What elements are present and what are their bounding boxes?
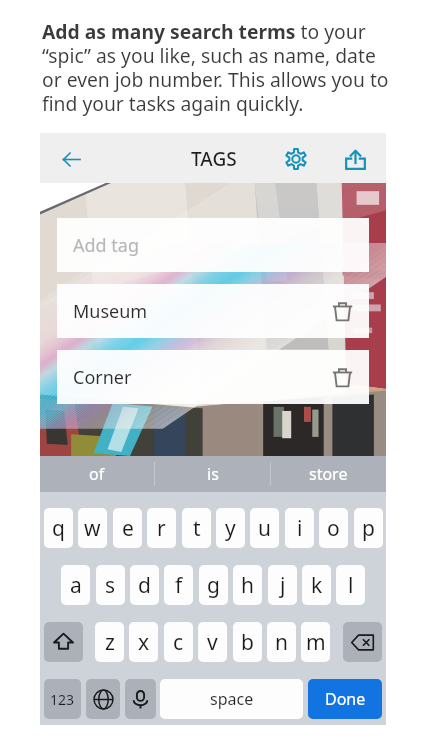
button[interactable]: Backspace — [343, 622, 382, 662]
button[interactable]: l — [336, 565, 365, 605]
staticText: a — [70, 571, 82, 600]
button[interactable]: s — [96, 565, 125, 605]
staticText: n — [275, 628, 288, 657]
button[interactable]: t — [182, 508, 211, 548]
staticText: x — [138, 628, 150, 657]
staticText: z — [105, 628, 115, 657]
staticText: w — [84, 514, 101, 543]
button[interactable]: n — [267, 622, 296, 662]
button[interactable]: 123 — [44, 679, 81, 719]
button[interactable]: Shift — [44, 622, 83, 662]
staticText: Add tag — [73, 233, 139, 258]
staticText: e — [122, 514, 134, 543]
staticText: i — [297, 514, 303, 543]
button[interactable]: Dictate — [125, 679, 156, 719]
button[interactable]: o — [319, 508, 348, 548]
button[interactable]: Settings — [276, 139, 316, 179]
button[interactable]: Delete tag — [324, 359, 360, 395]
button[interactable]: x — [129, 622, 158, 662]
button[interactable]: f — [164, 565, 193, 605]
button[interactable]: c — [164, 622, 193, 662]
button[interactable]: Add tag — [57, 218, 369, 272]
button[interactable]: u — [250, 508, 279, 548]
staticText: Done — [325, 688, 366, 710]
button[interactable]: k — [302, 565, 331, 605]
staticText: store — [309, 463, 348, 485]
button[interactable]: Delete tag — [324, 293, 360, 329]
staticText: s — [105, 571, 116, 600]
button[interactable]: Corner — [57, 350, 369, 404]
button[interactable]: Back — [51, 139, 91, 179]
button[interactable]: i — [285, 508, 314, 548]
button[interactable]: r — [147, 508, 176, 548]
staticText: Add as many search terms to your “spic” … — [42, 18, 390, 116]
staticText: TAGS — [191, 146, 237, 172]
staticText: Corner — [73, 365, 132, 390]
button[interactable]: v — [198, 622, 227, 662]
button[interactable]: g — [199, 565, 228, 605]
button[interactable]: a — [61, 565, 90, 605]
button[interactable]: b — [233, 622, 262, 662]
button[interactable]: w — [78, 508, 107, 548]
staticText: r — [157, 514, 166, 543]
button[interactable]: Done — [308, 679, 382, 719]
staticText: Museum — [73, 299, 148, 324]
button[interactable]: y — [216, 508, 245, 548]
staticText: of — [89, 463, 105, 485]
staticText: b — [241, 628, 254, 657]
staticText: p — [362, 514, 375, 543]
staticText: j — [280, 571, 286, 600]
staticText: d — [138, 571, 151, 600]
staticText: c — [173, 628, 184, 657]
staticText: 123 — [50, 690, 75, 709]
button[interactable]: store — [271, 456, 386, 492]
staticText: o — [327, 514, 340, 543]
staticText: l — [348, 571, 354, 600]
staticText: f — [175, 571, 183, 600]
staticText: h — [241, 571, 254, 600]
button[interactable]: Change keyboard language — [86, 679, 120, 719]
staticText: t — [193, 514, 201, 543]
button[interactable]: j — [268, 565, 297, 605]
button[interactable]: p — [354, 508, 383, 548]
button[interactable]: e — [113, 508, 142, 548]
staticText: g — [207, 571, 220, 600]
staticText: m — [306, 628, 326, 657]
button[interactable]: is — [155, 456, 270, 492]
staticText: k — [311, 571, 323, 600]
button[interactable]: d — [130, 565, 159, 605]
button[interactable]: h — [233, 565, 262, 605]
button[interactable]: m — [301, 622, 330, 662]
button[interactable]: Museum — [57, 284, 369, 338]
staticText: space — [210, 688, 254, 710]
button[interactable]: Share — [335, 139, 375, 179]
button[interactable]: q — [44, 508, 73, 548]
staticText: y — [225, 514, 236, 543]
staticText: u — [258, 514, 271, 543]
button[interactable]: of — [40, 456, 154, 492]
button[interactable]: space — [160, 679, 303, 719]
staticText: is — [207, 463, 219, 485]
staticText: v — [207, 628, 218, 657]
staticText: q — [52, 514, 65, 543]
button[interactable]: z — [95, 622, 124, 662]
